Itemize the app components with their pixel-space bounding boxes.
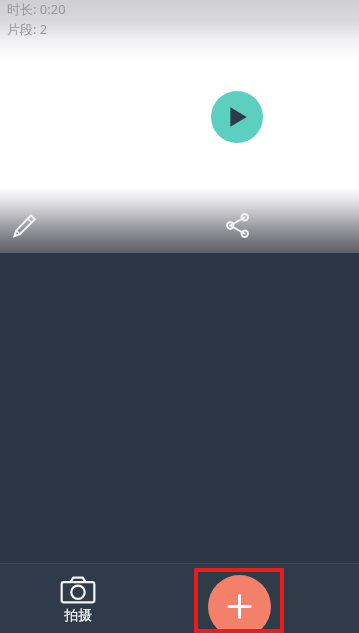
button[interactable]: 拍摄: [38, 570, 118, 633]
button[interactable]: Add: [194, 568, 284, 633]
button[interactable]: Share: [215, 203, 259, 247]
button[interactable]: Play: [211, 91, 263, 143]
staticText: 时长: 0:20: [7, 0, 66, 18]
staticText: 片段: 2: [7, 20, 48, 38]
staticText: 拍摄: [64, 607, 92, 625]
button[interactable]: Edit: [2, 203, 46, 247]
